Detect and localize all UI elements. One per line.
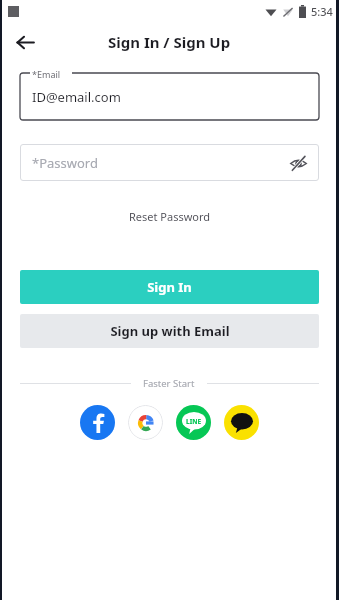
button[interactable]: *Email <box>20 68 319 120</box>
button[interactable]: Reset Password <box>121 205 219 228</box>
staticText: ID@email.com <box>32 88 121 106</box>
button[interactable]: Toggle password visibility <box>285 150 311 176</box>
staticText: Sign In <box>147 278 192 296</box>
button[interactable]: Sign in with Facebook <box>80 405 115 440</box>
button[interactable]: Sign in with KakaoTalk <box>224 405 259 440</box>
button[interactable]: Back <box>10 27 40 57</box>
staticText: *Email <box>32 68 61 80</box>
staticText: Reset Password <box>129 209 211 224</box>
button[interactable]: Sign in with LINE <box>176 405 211 440</box>
button[interactable]: *Password <box>20 144 319 181</box>
button[interactable]: Sign up with Email <box>20 314 319 348</box>
staticText: 5:34 <box>311 4 333 19</box>
staticText: *Password <box>32 154 98 172</box>
staticText: Sign In / Sign Up <box>108 32 231 52</box>
staticText: LINE <box>186 417 202 426</box>
button[interactable]: Sign In <box>20 270 319 304</box>
staticText: Sign up with Email <box>110 322 230 340</box>
staticText: Faster Start <box>143 377 195 390</box>
button[interactable]: Sign in with Google <box>128 405 163 440</box>
